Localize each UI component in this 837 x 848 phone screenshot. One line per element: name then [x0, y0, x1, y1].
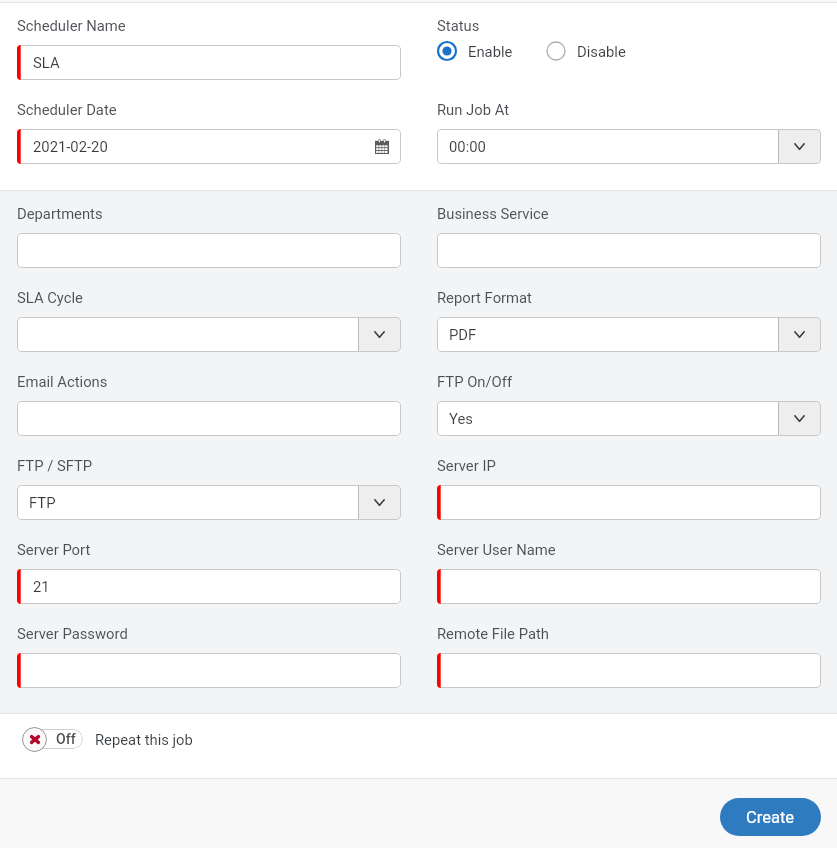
button[interactable]: Open FTP / SFTP list: [359, 486, 400, 519]
staticText: FTP / SFTP: [17, 457, 93, 474]
button[interactable]: Repeat this job toggle, off: [22, 726, 83, 752]
button[interactable]: Disable: [546, 41, 626, 61]
staticText: 00:00: [449, 138, 486, 155]
staticText: Server User Name: [437, 541, 556, 558]
button[interactable]: Open FTP On/Off list: [779, 402, 820, 435]
staticText: FTP On/Off: [437, 373, 513, 390]
button[interactable]: Open Report Format list: [779, 318, 820, 351]
button[interactable]: Report Format: [437, 317, 821, 352]
staticText: Run Job At: [437, 101, 510, 118]
staticText: Disable: [577, 43, 626, 60]
button[interactable]: Scheduler Name: [17, 45, 401, 80]
button[interactable]: Scheduler Date: [17, 129, 401, 164]
staticText: Yes: [449, 410, 473, 427]
staticText: Off: [56, 731, 76, 747]
button[interactable]: Pick Scheduler Date: [375, 139, 389, 154]
button[interactable]: Open Run Job At list: [779, 130, 820, 163]
staticText: Scheduler Name: [17, 17, 126, 34]
staticText: Email Actions: [17, 373, 108, 390]
staticText: SLA: [33, 54, 60, 71]
staticText: FTP: [29, 494, 56, 511]
button[interactable]: Email Actions: [17, 401, 401, 436]
staticText: Repeat this job: [95, 731, 193, 748]
staticText: Server Password: [17, 625, 128, 642]
staticText: PDF: [449, 326, 477, 343]
button[interactable]: FTP / SFTP: [17, 485, 401, 520]
button[interactable]: Server Password: [17, 653, 401, 688]
button[interactable]: Departments: [17, 233, 401, 268]
button[interactable]: Run Job At: [437, 129, 821, 164]
button[interactable]: Open SLA Cycle list: [359, 318, 400, 351]
staticText: Business Service: [437, 205, 549, 222]
button[interactable]: Server User Name: [437, 569, 821, 604]
button[interactable]: Server IP: [437, 485, 821, 520]
staticText: Report Format: [437, 289, 532, 306]
button[interactable]: SLA Cycle: [17, 317, 401, 352]
staticText: Departments: [17, 205, 103, 222]
button[interactable]: Server Port: [17, 569, 401, 604]
button[interactable]: Remote File Path: [437, 653, 821, 688]
staticText: Status: [437, 17, 480, 34]
staticText: Server Port: [17, 541, 91, 558]
button[interactable]: Create: [720, 798, 821, 836]
staticText: 2021-02-20: [33, 138, 108, 155]
staticText: Scheduler Date: [17, 101, 117, 118]
staticText: 21: [33, 578, 50, 595]
staticText: Create: [746, 808, 795, 827]
staticText: SLA Cycle: [17, 289, 83, 306]
staticText: Enable: [468, 43, 513, 60]
button[interactable]: Business Service: [437, 233, 821, 268]
button[interactable]: Enable: [437, 41, 513, 61]
staticText: Server IP: [437, 457, 496, 474]
staticText: Remote File Path: [437, 625, 549, 642]
button[interactable]: FTP On/Off: [437, 401, 821, 436]
